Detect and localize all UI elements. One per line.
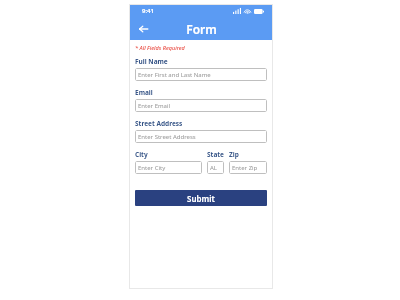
button[interactable]: Enter Street Address xyxy=(135,130,267,143)
button[interactable]: AL xyxy=(207,161,224,174)
staticText: Enter Street Address xyxy=(138,133,196,141)
staticText: Zip xyxy=(229,150,239,159)
button[interactable]: Enter Zip xyxy=(229,161,267,174)
staticText: Submit xyxy=(187,193,215,204)
staticText: 9:41 xyxy=(142,7,154,15)
staticText: Email xyxy=(135,88,153,97)
staticText: Enter First and Last Name xyxy=(138,71,211,79)
button[interactable]: Submit xyxy=(135,190,267,206)
staticText: Enter City xyxy=(138,164,166,172)
button[interactable]: Enter Email xyxy=(135,99,267,112)
button[interactable]: Enter City xyxy=(135,161,202,174)
staticText: Full Name xyxy=(135,57,168,66)
staticText: Street Address xyxy=(135,119,183,128)
button[interactable]: Enter First and Last Name xyxy=(135,68,267,81)
staticText: City xyxy=(135,150,148,159)
staticText: * All Fields Required xyxy=(135,44,185,51)
staticText: Enter Email xyxy=(138,102,171,110)
button[interactable]: Back xyxy=(135,21,151,37)
staticText: AL xyxy=(210,164,217,172)
staticText: State xyxy=(207,150,224,159)
staticText: Enter Zip xyxy=(232,164,258,172)
staticText: Form xyxy=(186,21,217,37)
